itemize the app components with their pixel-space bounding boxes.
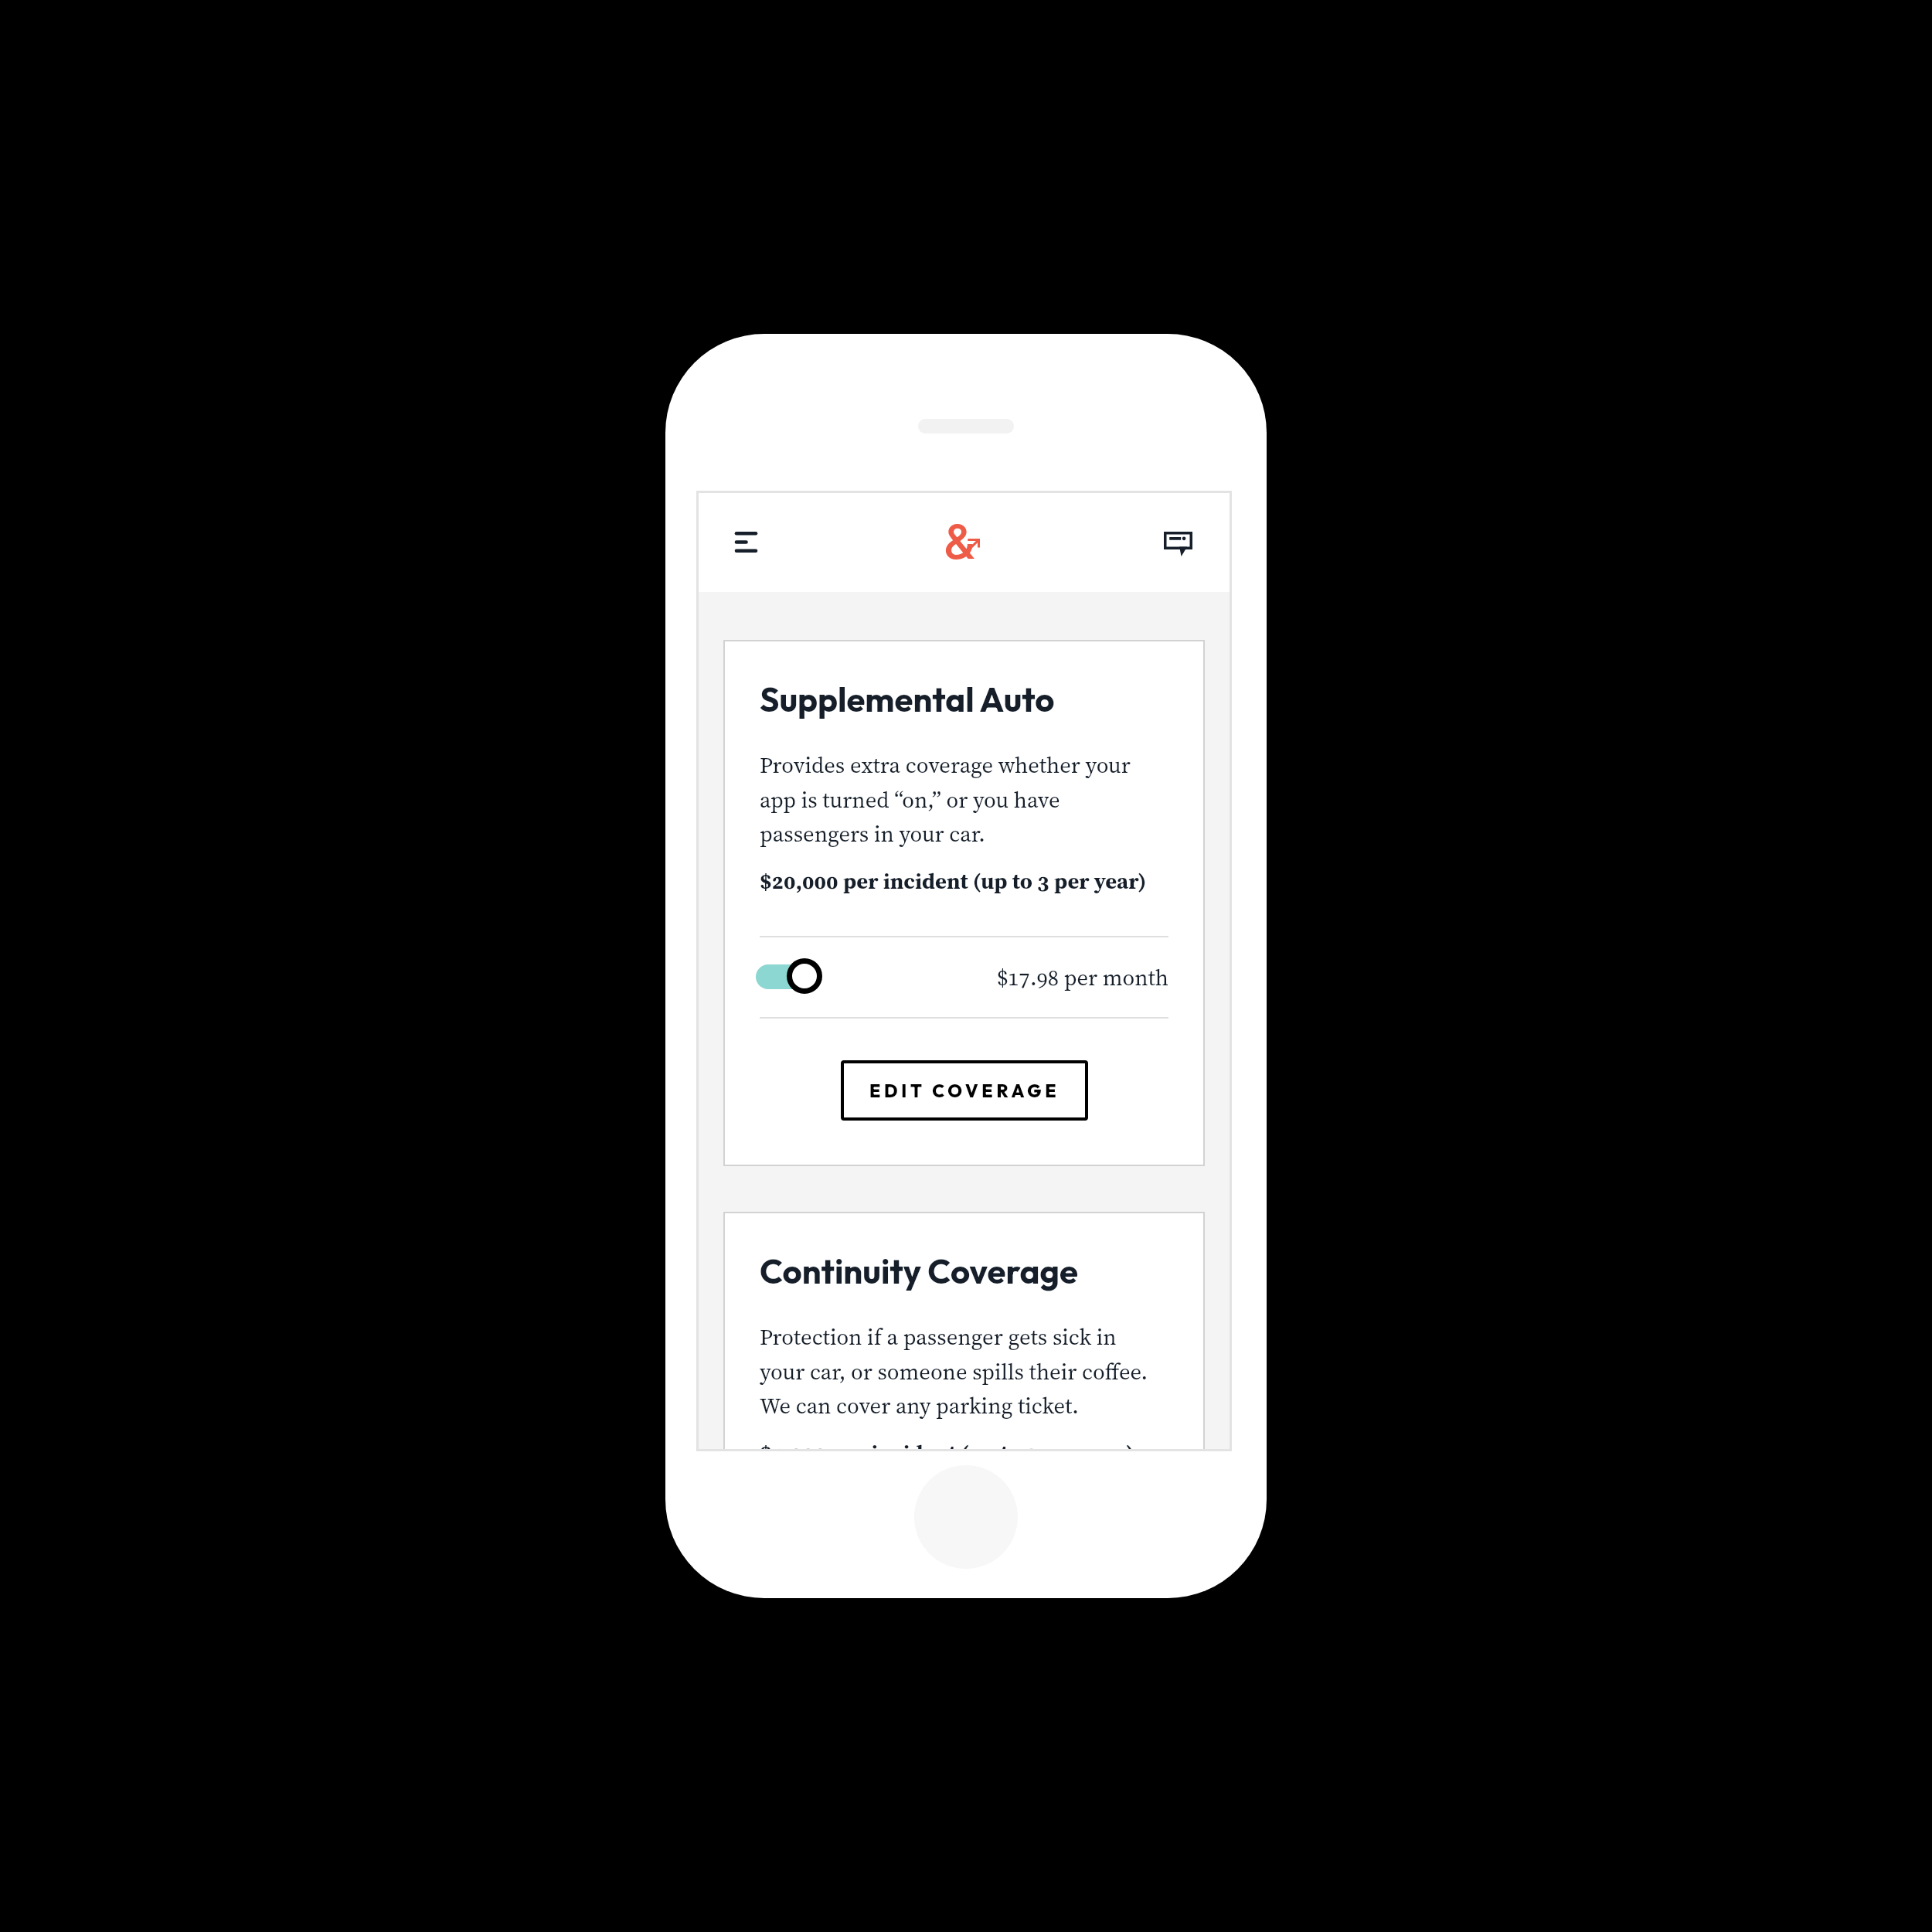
button[interactable]: Home [944, 513, 975, 570]
staticText: & [944, 513, 975, 570]
button[interactable]: Open navigation menu [718, 514, 774, 570]
staticText: Supplemental Auto [760, 678, 1055, 720]
button[interactable]: EDIT COVERAGE [841, 1060, 1088, 1121]
button[interactable]: Coverage enabled [756, 957, 824, 995]
staticText: $1,000 per incident (up to 2 per year) [760, 1437, 1134, 1451]
button[interactable]: Messages [1150, 516, 1206, 572]
staticText: $20,000 per incident (up to 3 per year) [760, 866, 1147, 896]
staticText: Continuity Coverage [760, 1250, 1078, 1292]
staticText: Protection if a passenger gets sick in y… [760, 1321, 1158, 1420]
staticText: Provides extra coverage whether your app… [760, 750, 1158, 849]
staticText: $17.98 per month [997, 962, 1168, 992]
staticText: EDIT COVERAGE [869, 1080, 1060, 1102]
